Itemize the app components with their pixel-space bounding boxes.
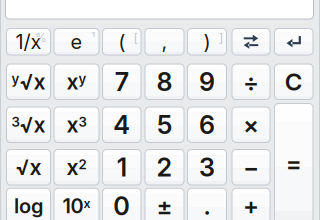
staticText: √x [15,155,41,180]
staticText: 6 [199,110,215,140]
button[interactable]: 3 [187,149,226,185]
button[interactable]: √x [6,64,50,99]
staticText: ] [219,30,223,45]
staticText: 4 [113,110,130,140]
staticText: 7 [115,67,129,97]
staticText: ÷ [243,68,259,96]
staticText: xy [66,69,86,94]
button[interactable]: √x [6,149,50,185]
button[interactable]: Swap operands [232,28,270,55]
button[interactable]: Decimal point [187,188,226,220]
button[interactable]: 9 [187,64,226,99]
button[interactable]: Plus [232,188,270,220]
staticText: . [203,192,210,220]
staticText: 3√x [11,112,45,137]
staticText: + [243,192,259,220]
staticText: e [70,30,82,54]
staticText: = [286,149,302,178]
staticText: , [161,30,167,54]
staticText: ¹ [91,30,95,45]
staticText: C [285,68,303,96]
staticText: 0 [113,191,130,220]
staticText: 3 [199,152,215,182]
staticText: × [243,111,259,139]
button[interactable]: Clear [274,64,313,99]
button[interactable]: x [54,64,99,99]
button[interactable]: ) [187,28,226,55]
staticText: x2 [66,155,86,180]
button[interactable]: Enter [274,28,313,55]
button[interactable]: 7 [102,64,141,99]
staticText: ± [156,192,172,220]
button[interactable]: log [6,188,50,220]
button[interactable]: Multiply [232,107,270,142]
button[interactable]: 8 [145,64,184,99]
staticText: 2 [156,152,172,182]
button[interactable]: 1/x [6,28,50,55]
staticText: − [243,153,259,181]
button[interactable]: 1 [102,149,141,185]
button[interactable]: 0 [102,188,141,220]
button[interactable]: 2 [145,149,184,185]
staticText: 1 [117,152,127,182]
button[interactable]: 10 [54,188,99,220]
staticText: [ [133,30,137,45]
staticText: 8 [156,67,172,97]
staticText: 10x [62,194,90,218]
button[interactable]: Divide [232,64,270,99]
staticText: 5 [157,110,172,140]
button[interactable]: Minus [232,149,270,185]
button[interactable]: 4 [102,107,141,142]
button[interactable]: 5 [145,107,184,142]
button[interactable]: Plus minus [145,188,184,220]
button[interactable]: x [54,149,99,185]
button[interactable]: 6 [187,107,226,142]
button[interactable]: x [54,107,99,142]
button[interactable]: , [145,28,184,55]
staticText: log [14,194,43,218]
staticText: y√x [11,69,45,94]
button[interactable]: e [54,28,99,55]
staticText: 9 [199,67,215,97]
staticText: % [35,30,47,45]
button[interactable]: ( [102,28,141,55]
button[interactable]: Equals [274,103,313,220]
button[interactable]: √x [6,107,50,142]
staticText: ) [203,30,210,54]
staticText: 1/x [15,30,41,54]
staticText: ( [118,30,125,54]
staticText: x3 [66,112,86,137]
